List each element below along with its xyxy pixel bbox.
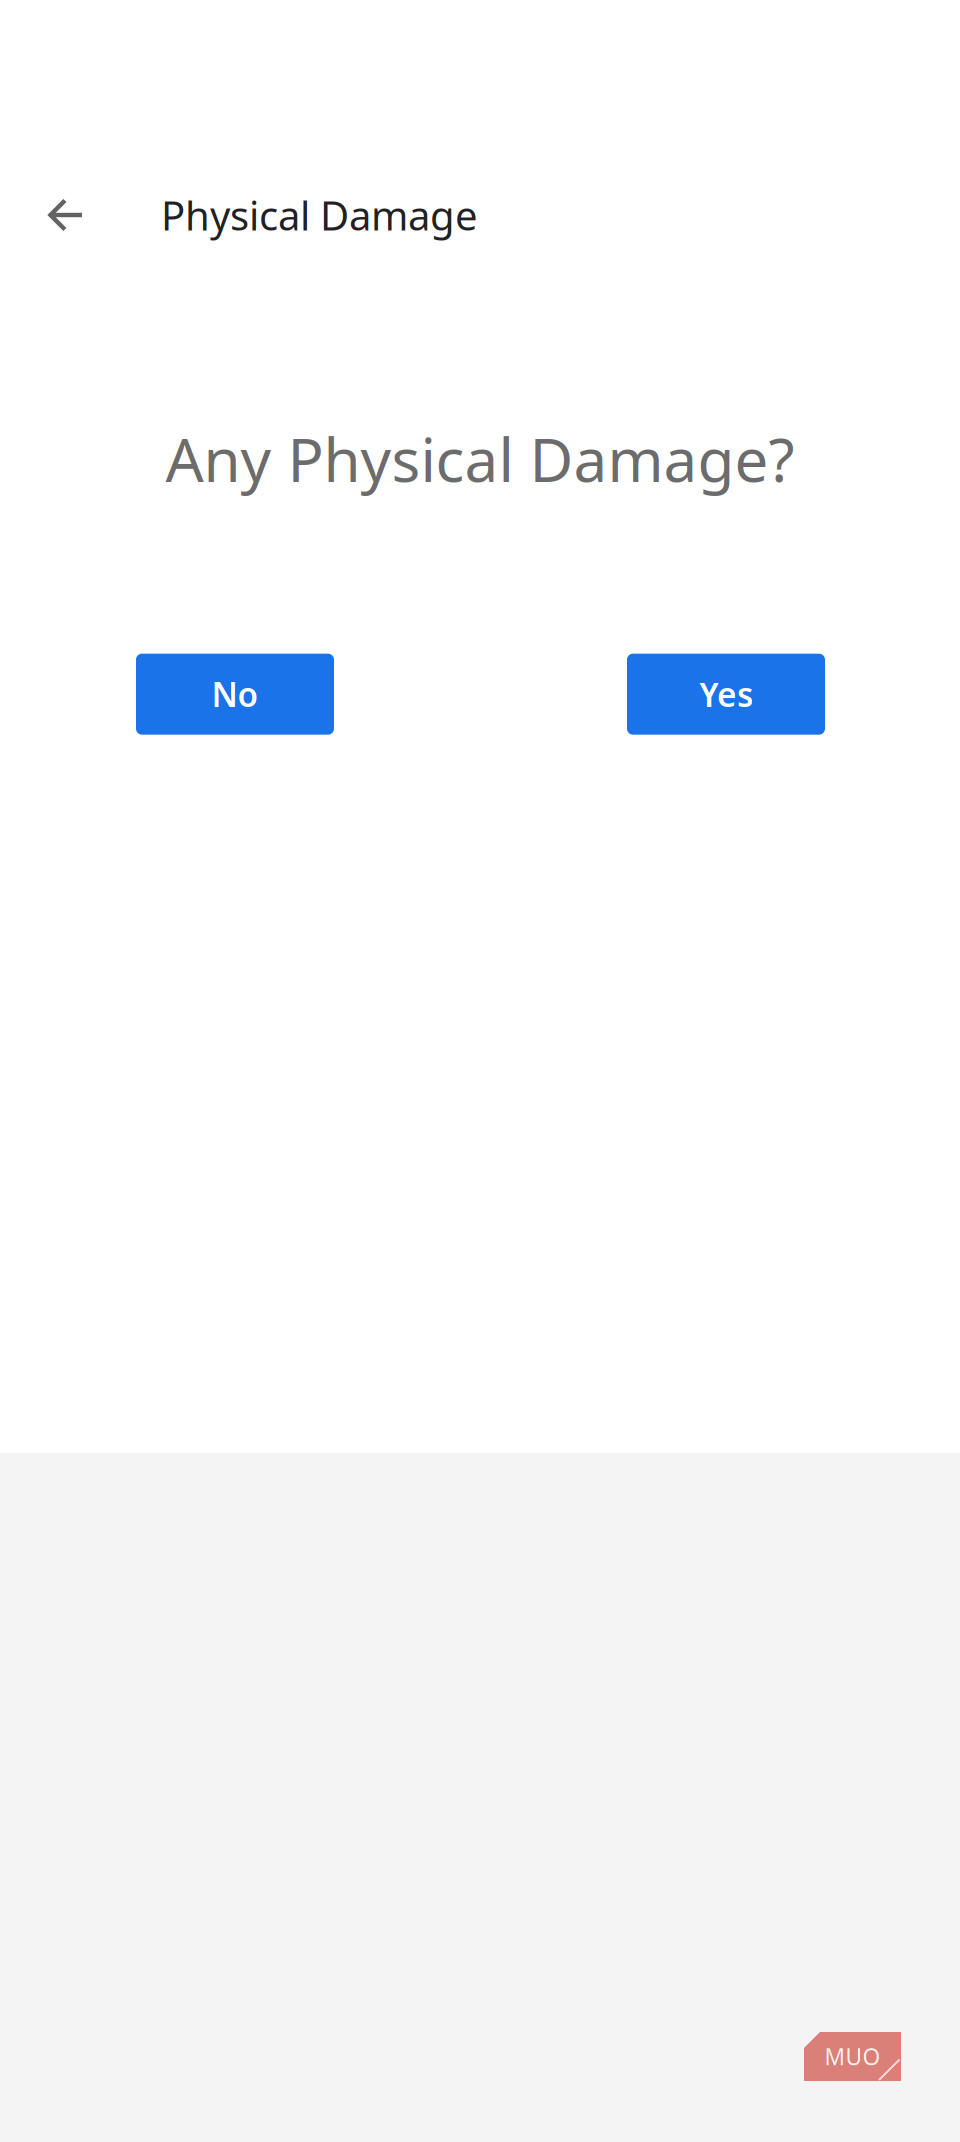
button[interactable]: Back bbox=[0, 167, 161, 263]
staticText: No bbox=[211, 672, 258, 716]
staticText: Any Physical Damage? bbox=[165, 419, 794, 499]
staticText: MUO bbox=[824, 2041, 880, 2071]
button[interactable]: No bbox=[136, 654, 334, 735]
staticText: Physical Damage bbox=[161, 188, 478, 241]
staticText: Yes bbox=[699, 672, 753, 716]
button[interactable]: Yes bbox=[627, 654, 825, 735]
